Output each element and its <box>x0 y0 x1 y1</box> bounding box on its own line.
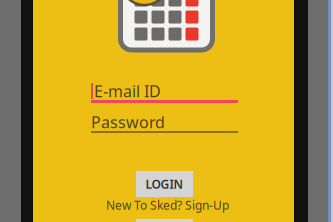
button[interactable]: LOGIN <box>136 171 193 197</box>
button[interactable]: Password <box>91 113 238 133</box>
staticText: E-mail ID <box>94 80 161 102</box>
staticText: New To Sked? Sign-Up <box>106 197 229 213</box>
staticText: Password <box>91 111 165 133</box>
staticText: LOGIN <box>145 176 183 192</box>
button[interactable]: New To Sked? Sign-Up <box>96 198 239 212</box>
button[interactable]: E-mail ID <box>91 82 238 103</box>
